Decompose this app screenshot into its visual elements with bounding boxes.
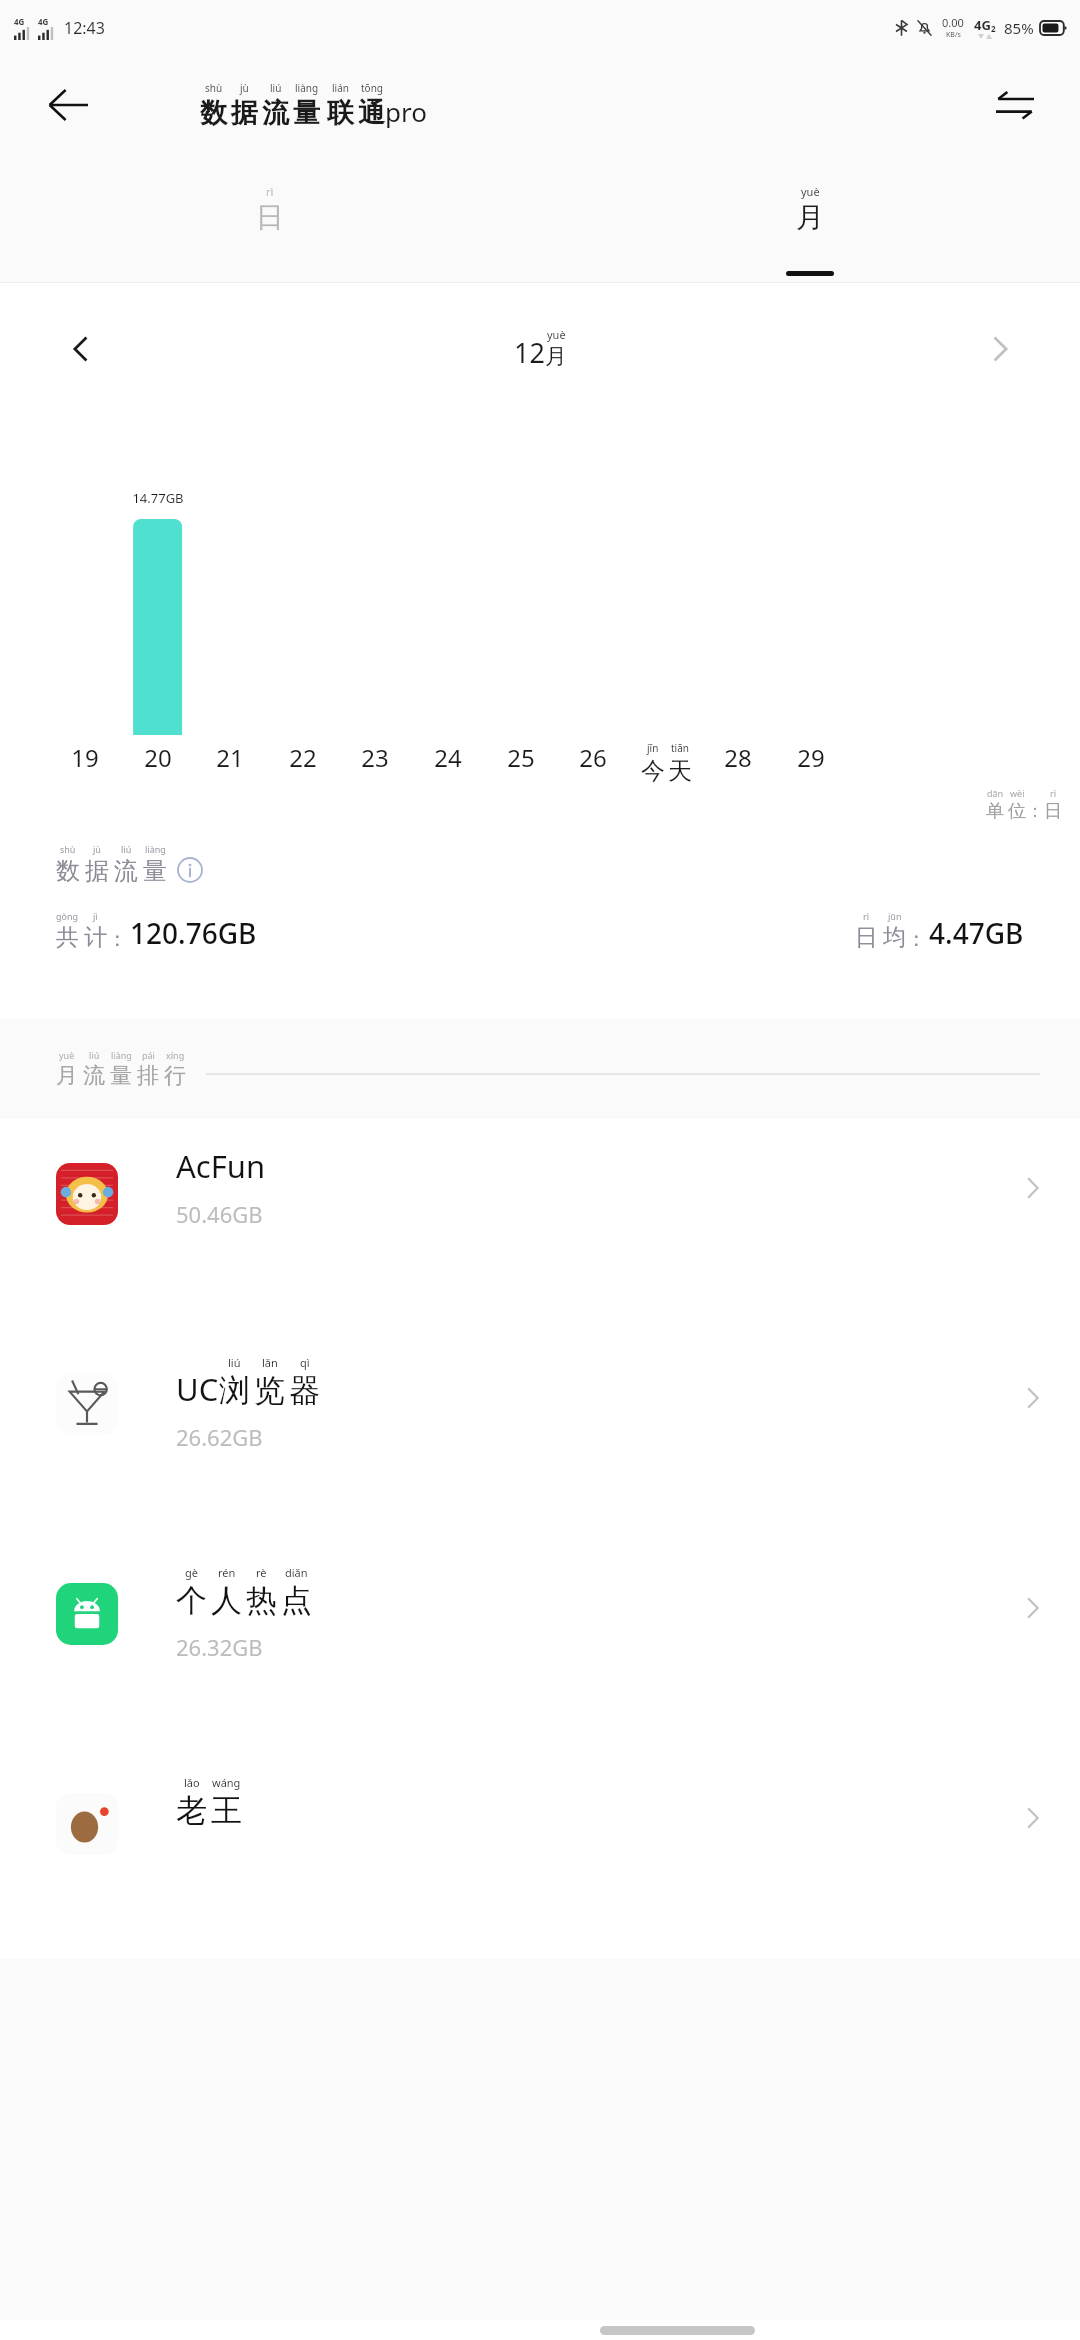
button[interactable]: Switch xyxy=(988,78,1042,132)
staticText: dān xyxy=(987,787,1004,799)
staticText: 21 xyxy=(216,741,244,774)
button[interactable]: UC xyxy=(0,1329,1080,1539)
staticText: jù xyxy=(93,843,101,855)
staticText: pái xyxy=(142,1049,155,1061)
staticText: 4G xyxy=(38,16,49,27)
staticText: 月 xyxy=(796,200,824,235)
staticText: diǎn xyxy=(285,1565,308,1580)
button[interactable]: rì xyxy=(0,155,540,283)
staticText: liú xyxy=(121,843,132,855)
staticText: 日 xyxy=(855,923,878,952)
staticText: 器 xyxy=(289,1371,320,1410)
staticText: 28 xyxy=(724,741,752,774)
staticText: 29 xyxy=(797,741,825,774)
staticText: 浏 xyxy=(219,1371,250,1410)
staticText: 8.20GB xyxy=(63,737,107,755)
staticText: liú xyxy=(89,1049,100,1061)
staticText: liú xyxy=(270,81,282,95)
staticText: 月 xyxy=(545,343,567,371)
staticText: KB/s xyxy=(946,30,961,40)
staticText: jù xyxy=(240,81,249,95)
staticText: 据 xyxy=(85,856,109,886)
staticText: 22 xyxy=(289,741,317,774)
staticText: 4G xyxy=(14,16,25,27)
staticText: 热 xyxy=(246,1581,277,1620)
staticText: 位 xyxy=(1008,800,1026,823)
staticText: 联 xyxy=(327,96,354,130)
button[interactable]: lǎo xyxy=(0,1749,1080,1959)
staticText: jì xyxy=(93,910,98,922)
staticText: 均 xyxy=(883,923,906,952)
staticText: yuè xyxy=(59,1049,75,1061)
staticText: 数 xyxy=(56,856,80,886)
staticText: 26.32GB xyxy=(176,1632,263,1662)
staticText: jīn xyxy=(647,741,659,755)
staticText: 共 xyxy=(56,923,79,952)
staticText: AcFun xyxy=(176,1145,266,1187)
staticText: liàng xyxy=(145,843,166,855)
staticText: 日 xyxy=(256,200,284,235)
staticText: 12 xyxy=(514,334,545,371)
staticText: 据 xyxy=(231,96,258,130)
staticText: 人 xyxy=(211,1581,242,1620)
staticText: 个 xyxy=(176,1581,207,1620)
button[interactable]: Next month xyxy=(972,321,1028,377)
button[interactable]: 12 xyxy=(514,327,567,371)
staticText: 天 xyxy=(668,756,692,786)
staticText: 量 xyxy=(293,96,320,130)
staticText: 行 xyxy=(164,1062,186,1090)
staticText: 老 xyxy=(176,1791,207,1830)
button[interactable]: gè xyxy=(0,1539,1080,1749)
staticText: tiān xyxy=(671,741,689,755)
button[interactable]: AcFun xyxy=(0,1119,1080,1329)
button[interactable]: Previous month xyxy=(52,321,108,377)
button[interactable]: Back xyxy=(40,77,96,133)
button[interactable]: yuè xyxy=(540,155,1080,283)
staticText: lǎo xyxy=(184,1775,200,1790)
staticText: qì xyxy=(300,1355,310,1370)
staticText: shù xyxy=(205,81,223,95)
staticText: 流 xyxy=(114,856,138,886)
staticText: rì xyxy=(266,184,274,199)
staticText: lián xyxy=(332,81,349,95)
staticText: rè xyxy=(256,1565,267,1580)
staticText: 85% xyxy=(1004,18,1034,38)
staticText: 通 xyxy=(358,96,385,130)
button[interactable]: Info xyxy=(177,857,203,883)
staticText: 26.62GB xyxy=(176,1422,263,1452)
staticText: 量 xyxy=(143,856,167,886)
staticText: 日 xyxy=(1044,800,1062,823)
staticText: jūn xyxy=(888,910,902,922)
staticText: liú xyxy=(228,1355,241,1370)
staticText: 2 xyxy=(991,23,996,34)
staticText: rén xyxy=(218,1565,236,1580)
staticText: 24 xyxy=(434,741,462,774)
staticText: lǎn xyxy=(262,1355,278,1370)
staticText: 流 xyxy=(83,1062,105,1090)
staticText: rì xyxy=(863,910,870,922)
staticText: UC xyxy=(176,1368,219,1410)
staticText: ： xyxy=(107,926,128,952)
staticText: yuè xyxy=(547,327,566,342)
staticText: 量 xyxy=(110,1062,132,1090)
staticText: ： xyxy=(906,926,927,952)
staticText: 计 xyxy=(84,923,107,952)
staticText: 览 xyxy=(254,1371,285,1410)
staticText: 数 xyxy=(200,96,227,130)
staticText: 点 xyxy=(281,1581,312,1620)
staticText: 14.77GB xyxy=(132,489,184,507)
staticText: 4G xyxy=(974,16,991,34)
staticText: tōng xyxy=(361,81,383,95)
staticText: shù xyxy=(60,843,76,855)
staticText: 排 xyxy=(137,1062,159,1090)
staticText: 今 xyxy=(641,756,665,786)
staticText: pro xyxy=(385,94,427,129)
staticText: rì xyxy=(1050,787,1057,799)
staticText: wèi xyxy=(1010,787,1025,799)
